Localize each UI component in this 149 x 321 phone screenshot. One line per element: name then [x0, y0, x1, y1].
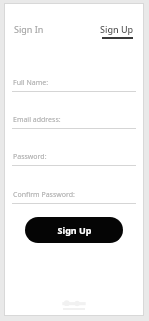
staticText: Email address:	[13, 115, 61, 125]
button[interactable]: Email address:	[12, 115, 136, 129]
staticText: Confirm Password:	[13, 190, 75, 200]
staticText: Sign Up	[57, 224, 92, 236]
button[interactable]: Sign Up	[98, 22, 136, 40]
button[interactable]: Sign Up	[25, 217, 123, 243]
button[interactable]: Confirm Password:	[12, 190, 136, 204]
button[interactable]: Full Name:	[12, 78, 136, 92]
staticText: Sign In	[14, 23, 44, 35]
staticText: Full Name:	[13, 78, 49, 88]
staticText: Sign Up	[100, 23, 134, 35]
staticText: Password:	[13, 152, 47, 162]
button[interactable]: Password:	[12, 152, 136, 166]
button[interactable]: Sign In	[12, 22, 46, 36]
